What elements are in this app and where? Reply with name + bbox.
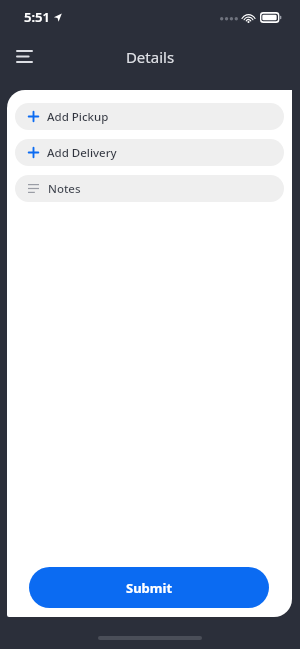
staticText: 5:51 <box>24 8 50 26</box>
button[interactable]: Notes <box>15 175 284 202</box>
staticText: Submit <box>126 579 173 597</box>
staticText: Details <box>0 47 300 67</box>
staticText: Add Pickup <box>47 109 109 125</box>
staticText: Notes <box>48 181 81 197</box>
button[interactable]: Add Delivery <box>15 139 284 166</box>
button[interactable]: Add Pickup <box>15 103 284 130</box>
staticText: Add Delivery <box>47 145 117 161</box>
button[interactable]: Menu <box>8 40 40 72</box>
button[interactable]: Submit <box>29 567 269 608</box>
